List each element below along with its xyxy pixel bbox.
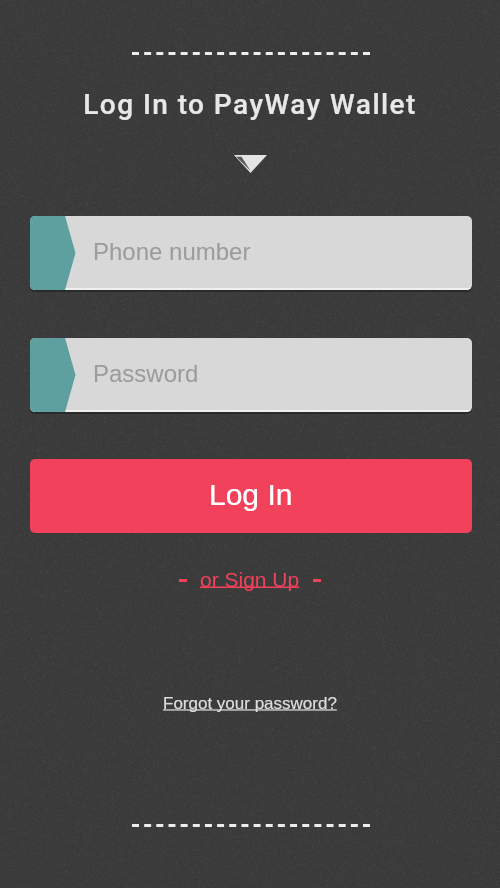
staticText: Phone number xyxy=(93,238,251,265)
staticText: Forgot your password? xyxy=(163,694,337,713)
button[interactable]: Log In xyxy=(30,459,472,533)
other: Expand xyxy=(234,155,267,173)
staticText: Log In xyxy=(209,478,293,512)
staticText: Password xyxy=(93,360,199,387)
button[interactable]: or Sign Up xyxy=(175,566,325,594)
button[interactable]: Password xyxy=(30,338,472,412)
staticText: Log In to PayWay Wallet xyxy=(0,88,500,121)
staticText: or Sign Up xyxy=(200,568,300,591)
button[interactable]: Phone number xyxy=(30,216,472,290)
button[interactable]: Forgot your password? xyxy=(158,691,342,717)
